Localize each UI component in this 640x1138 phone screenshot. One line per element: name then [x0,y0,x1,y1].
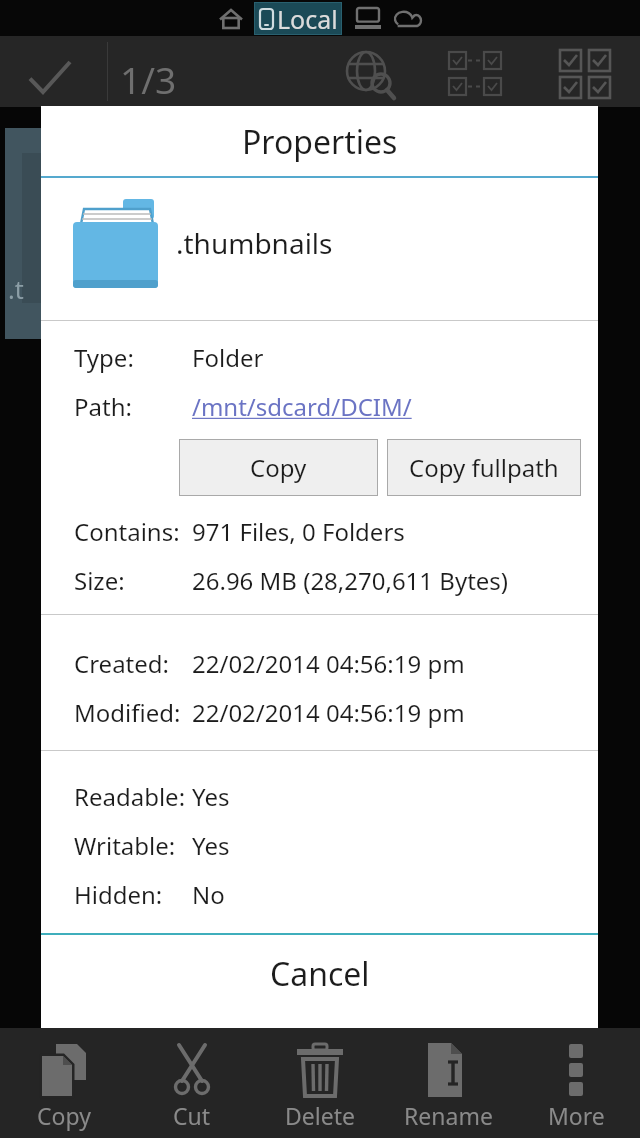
button[interactable]: Copy fullpath [387,439,581,496]
staticText: Cancel [270,952,370,996]
staticText: .t [8,272,24,306]
staticText: Yes [192,829,230,862]
staticText: 26.96 MB (28,270,611 Bytes) [192,564,509,597]
staticText: Cut [173,1100,211,1131]
staticText: No [192,878,225,911]
staticText: Modified: [74,696,181,729]
button[interactable] [219,9,243,29]
staticText: 971 Files, 0 Folders [192,515,405,548]
staticText: .thumbnails [176,224,333,262]
button[interactable]: /mnt/sdcard/DCIM/ [192,390,412,423]
staticText: Copy [37,1100,91,1131]
button[interactable] [394,10,422,28]
staticText: 1/3 [120,54,177,98]
staticText: Hidden: [74,878,163,911]
staticText: Folder [192,341,264,374]
staticText: Readable: [74,780,186,813]
staticText: Type: [74,341,134,374]
staticText: Created: [74,647,169,680]
staticText: Copy fullpath [409,451,559,484]
staticText: Size: [74,564,125,597]
staticText: Path: [74,390,132,423]
staticText: Yes [192,780,230,813]
button[interactable]: Copy [0,1028,128,1138]
button[interactable]: Copy [179,439,378,496]
button[interactable] [355,8,381,30]
button[interactable]: Delete [256,1028,384,1138]
button[interactable]: More [512,1028,640,1138]
button[interactable]: Cut [128,1028,256,1138]
staticText: More [548,1100,605,1131]
button[interactable]: Cancel [41,935,598,1013]
button[interactable]: Local [254,2,342,35]
button[interactable] [560,50,612,98]
staticText: Rename [404,1100,493,1131]
staticText: Local [277,2,338,35]
staticText: 22/02/2014 04:56:19 pm [192,647,465,680]
button[interactable] [28,60,72,94]
button[interactable]: Rename [384,1028,512,1138]
staticText: Delete [285,1100,355,1131]
button[interactable] [345,50,397,100]
staticText: 22/02/2014 04:56:19 pm [192,696,465,729]
staticText: Writable: [74,829,176,862]
staticText: Properties [242,120,398,164]
staticText: Copy [250,451,307,484]
button[interactable] [448,51,502,96]
staticText: Contains: [74,515,180,548]
